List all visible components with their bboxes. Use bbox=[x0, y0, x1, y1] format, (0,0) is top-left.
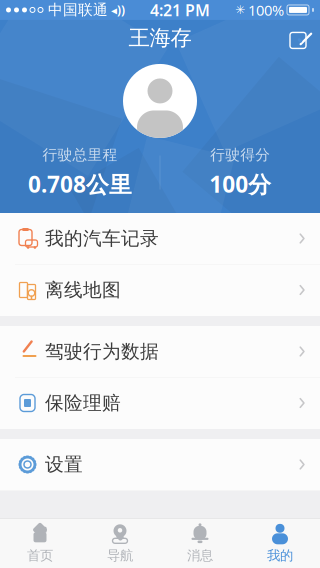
staticText: ◂)) bbox=[111, 2, 125, 18]
staticText: 首页 bbox=[27, 547, 53, 564]
button[interactable]: 我的 bbox=[240, 519, 320, 568]
staticText: 我的汽车记录 bbox=[45, 227, 159, 250]
button[interactable]: 首页 bbox=[0, 519, 80, 568]
button[interactable]: 我的汽车记录 bbox=[0, 213, 320, 264]
staticText: 我的 bbox=[267, 547, 293, 564]
staticText: 4:21 PM bbox=[150, 0, 210, 20]
button[interactable]: Edit profile bbox=[280, 20, 320, 56]
staticText: 驾驶行为数据 bbox=[45, 340, 159, 363]
button[interactable]: 消息 bbox=[160, 519, 240, 568]
staticText: 行驶得分 bbox=[210, 146, 270, 164]
staticText: 行驶总里程 bbox=[42, 146, 117, 164]
staticText: 消息 bbox=[187, 547, 213, 564]
staticText: 中国联通 bbox=[48, 1, 108, 19]
button[interactable]: 驾驶行为数据 bbox=[0, 326, 320, 377]
staticText: 离线地图 bbox=[45, 278, 121, 301]
button[interactable]: 离线地图 bbox=[0, 264, 320, 316]
staticText: 0.708公里 bbox=[28, 169, 132, 199]
button[interactable]: 导航 bbox=[80, 519, 160, 568]
staticText: 导航 bbox=[107, 547, 133, 564]
staticText: 王海存 bbox=[128, 25, 191, 51]
staticText: 100% bbox=[248, 0, 284, 20]
staticText: 保险理赔 bbox=[45, 391, 121, 414]
button[interactable]: 保险理赔 bbox=[0, 377, 320, 429]
button[interactable]: 设置 bbox=[0, 439, 320, 490]
staticText: 100分 bbox=[209, 169, 271, 199]
staticText: 设置 bbox=[45, 453, 83, 476]
staticText: ✳ bbox=[235, 3, 245, 17]
